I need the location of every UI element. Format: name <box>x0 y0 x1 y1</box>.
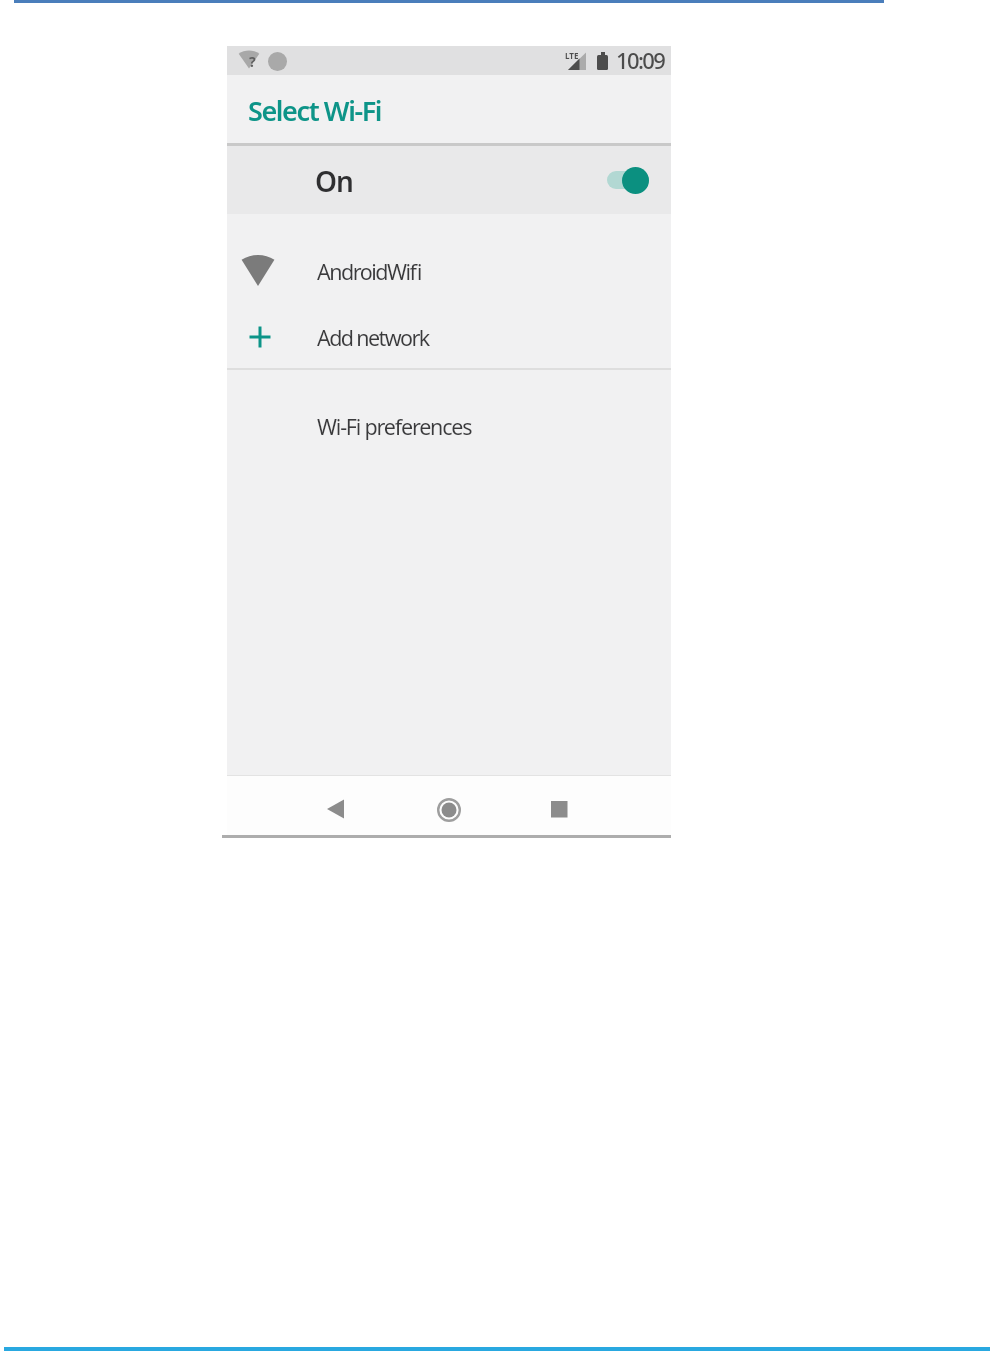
button[interactable] <box>320 794 352 826</box>
staticText: AndroidWifi <box>317 257 421 286</box>
staticText: LTE <box>565 50 579 61</box>
button[interactable] <box>543 793 575 825</box>
button[interactable] <box>622 167 649 194</box>
button[interactable] <box>227 390 671 460</box>
staticText: Add network <box>317 323 429 352</box>
staticText: Select Wi-Fi <box>248 92 381 129</box>
button[interactable] <box>227 232 671 308</box>
staticText: Wi-Fi preferences <box>317 412 472 441</box>
staticText: ? <box>249 52 256 71</box>
staticText: On <box>315 162 353 200</box>
button[interactable]: Select Wi-Fi <box>248 87 381 133</box>
button[interactable] <box>227 146 671 214</box>
button[interactable] <box>433 794 465 826</box>
button[interactable] <box>227 308 671 368</box>
staticText: 10:09 <box>616 45 665 75</box>
